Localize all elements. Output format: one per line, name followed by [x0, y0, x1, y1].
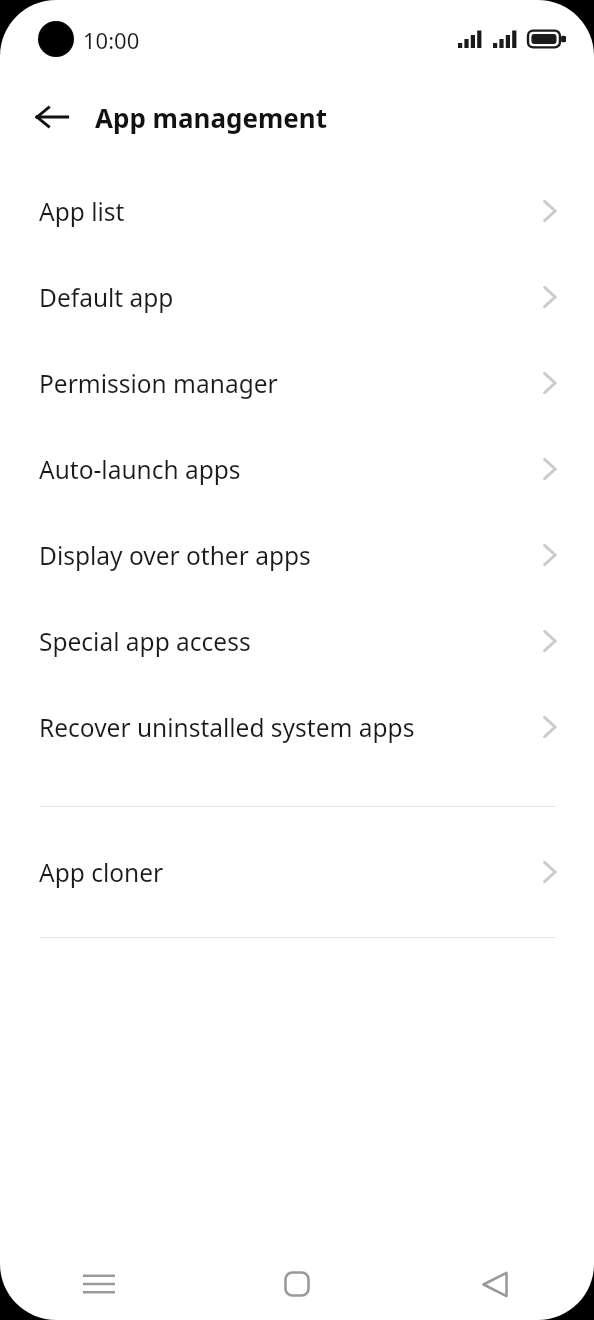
button[interactable]: Default app — [0, 254, 594, 340]
staticText: Default app — [39, 281, 538, 314]
staticText: 10:00 — [83, 25, 140, 55]
staticText: Recover uninstalled system apps — [39, 711, 538, 744]
button[interactable]: Back — [396, 1248, 594, 1320]
staticText: Special app access — [39, 625, 538, 658]
button[interactable]: Back — [22, 87, 82, 147]
staticText: Display over other apps — [39, 539, 538, 572]
staticText: App management — [95, 100, 328, 135]
staticText: Auto-launch apps — [39, 453, 538, 486]
staticText: App list — [39, 195, 538, 228]
staticText: Permission manager — [39, 367, 538, 400]
button[interactable]: Permission manager — [0, 340, 594, 426]
button[interactable]: Home — [198, 1248, 396, 1320]
button[interactable]: Recent apps — [0, 1248, 198, 1320]
button[interactable]: Recover uninstalled system apps — [0, 684, 594, 770]
button[interactable]: Auto-launch apps — [0, 426, 594, 512]
button[interactable]: App cloner — [0, 850, 594, 894]
button[interactable]: Display over other apps — [0, 512, 594, 598]
button[interactable]: Special app access — [0, 598, 594, 684]
staticText: App cloner — [39, 856, 538, 889]
button[interactable]: App list — [0, 168, 594, 254]
